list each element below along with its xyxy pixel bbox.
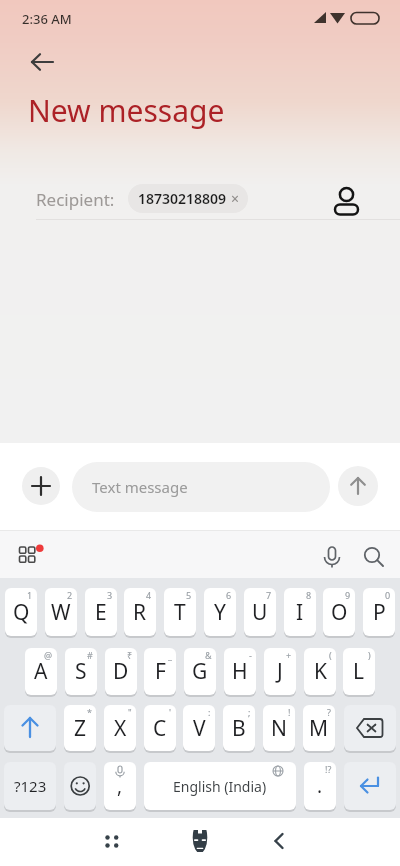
button[interactable]: , [104, 762, 136, 810]
staticText: ( [329, 649, 332, 661]
staticText: D [113, 657, 129, 686]
staticText: X [114, 714, 127, 743]
staticText: 2:36 AM [22, 10, 72, 28]
staticText: # [87, 649, 93, 661]
button[interactable]: Text message [72, 462, 330, 512]
staticText: New message [28, 90, 225, 131]
staticText: + [286, 649, 292, 661]
button[interactable]: U [244, 588, 276, 636]
button[interactable] [4, 705, 56, 751]
button[interactable]: T [164, 588, 196, 636]
staticText: - [249, 649, 252, 661]
button[interactable]: B [223, 705, 255, 751]
button[interactable]: K [304, 648, 336, 695]
button[interactable]: Q [5, 588, 37, 636]
staticText: I [296, 598, 304, 627]
button[interactable]: R [124, 588, 156, 636]
staticText: _ [168, 649, 172, 661]
button[interactable]: S [65, 648, 97, 695]
staticText: & [205, 649, 212, 661]
staticText: 5 [186, 589, 192, 601]
staticText: S [75, 657, 87, 686]
staticText: 0 [385, 589, 391, 601]
staticText: Y [214, 598, 226, 627]
staticText: V [193, 714, 206, 743]
button[interactable]: C [144, 705, 176, 751]
button[interactable] [344, 762, 396, 810]
staticText: : [208, 706, 211, 718]
staticText: 7 [266, 589, 272, 601]
staticText: C [153, 714, 167, 743]
staticText: Q [13, 598, 30, 627]
staticText: !? [325, 763, 332, 775]
button[interactable]: English (India) [144, 762, 296, 810]
staticText: H [232, 657, 248, 686]
staticText: Z [74, 714, 87, 743]
button[interactable]: J [264, 648, 296, 695]
button[interactable]: Z [64, 705, 96, 751]
button[interactable]: I [284, 588, 316, 636]
staticText: W [51, 598, 71, 627]
button[interactable]: O [323, 588, 355, 636]
staticText: B [232, 714, 246, 743]
button[interactable]: Y [204, 588, 236, 636]
button[interactable]: A [25, 648, 57, 695]
staticText: . [317, 773, 323, 799]
button[interactable]: N [263, 705, 295, 751]
staticText: A [34, 657, 48, 686]
staticText: ' [169, 706, 172, 718]
button[interactable] [98, 828, 126, 854]
staticText: " [128, 706, 132, 718]
staticText: 2 [67, 589, 73, 601]
button[interactable]: G [184, 648, 216, 695]
button[interactable]: L [343, 648, 375, 695]
staticText: T [174, 598, 186, 627]
staticText: R [133, 598, 147, 627]
button[interactable] [338, 466, 378, 506]
button[interactable]: X [104, 705, 136, 751]
staticText: ?123 [14, 776, 47, 796]
staticText: F [155, 657, 166, 686]
button[interactable]: P [363, 588, 395, 636]
staticText: 18730218809 [138, 189, 227, 208]
button[interactable] [20, 48, 64, 78]
staticText: M [309, 714, 329, 743]
staticText: ₹ [127, 649, 133, 661]
staticText: 4 [146, 589, 152, 601]
staticText: 9 [345, 589, 351, 601]
button[interactable] [266, 828, 292, 854]
button[interactable]: . [304, 762, 336, 810]
staticText: P [373, 598, 386, 627]
button[interactable]: F [144, 648, 176, 695]
button[interactable] [330, 180, 364, 218]
button[interactable] [12, 536, 52, 570]
staticText: N [271, 714, 287, 743]
staticText: K [314, 657, 327, 686]
staticText: L [353, 657, 365, 686]
staticText: Text message [92, 477, 188, 497]
button[interactable]: E [85, 588, 117, 636]
button[interactable]: 18730218809 [128, 184, 248, 213]
staticText: , [117, 773, 123, 799]
staticText: × [231, 189, 240, 208]
button[interactable] [356, 540, 392, 572]
button[interactable] [64, 762, 96, 810]
staticText: ! [288, 706, 291, 718]
staticText: ? [327, 706, 331, 718]
button[interactable] [190, 829, 210, 853]
staticText: G [192, 657, 208, 686]
button[interactable]: W [45, 588, 77, 636]
button[interactable] [22, 467, 60, 505]
button[interactable]: M [303, 705, 335, 751]
staticText: J [277, 657, 283, 686]
button[interactable]: D [105, 648, 137, 695]
staticText: E [95, 598, 107, 627]
button[interactable]: H [224, 648, 256, 695]
button[interactable]: V [183, 705, 215, 751]
staticText: English (India) [173, 777, 267, 796]
button[interactable] [314, 540, 350, 572]
button[interactable]: ?123 [4, 762, 56, 810]
staticText: Recipient: [36, 188, 115, 211]
button[interactable] [344, 705, 396, 751]
staticText: * [87, 706, 92, 718]
